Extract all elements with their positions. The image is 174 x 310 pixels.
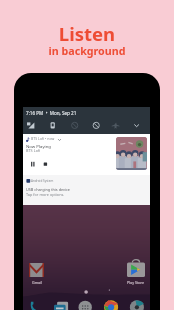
staticText: Now Playing	[26, 143, 51, 149]
button[interactable]: BTS Lofi • now	[23, 134, 150, 175]
staticText: Play Store	[121, 280, 150, 285]
staticText: Tap for more options.	[26, 192, 65, 197]
staticText: USB charging this device	[26, 187, 70, 192]
button[interactable]: Play Store	[127, 259, 145, 277]
staticText: BTS Lofi	[26, 148, 41, 153]
button[interactable]: Android System	[23, 175, 150, 205]
button[interactable]: Gmail	[29, 263, 44, 277]
staticText: 7:16 PM • Mon, Sep 21	[26, 110, 77, 116]
staticText: BTS Lofi • now	[31, 136, 55, 141]
staticText: Listen	[0, 21, 174, 46]
staticText: Android System	[31, 179, 54, 183]
staticText: Gmail	[26, 280, 48, 285]
staticText: in background	[0, 44, 174, 59]
